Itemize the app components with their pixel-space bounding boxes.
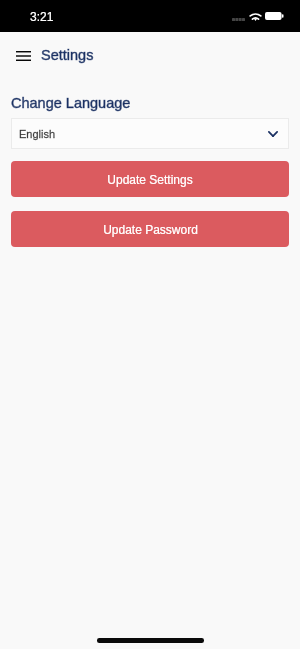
staticText: Settings — [41, 47, 94, 63]
button[interactable]: English — [11, 118, 289, 149]
staticText: 3:21 — [30, 10, 54, 23]
staticText: Update Password — [103, 223, 198, 236]
staticText: Change Language — [11, 95, 131, 111]
button[interactable]: Update Settings — [11, 161, 289, 197]
button[interactable]: Open navigation menu — [9, 41, 37, 69]
staticText: English — [19, 128, 56, 140]
staticText: English — [19, 128, 56, 140]
button[interactable]: Update Password — [11, 211, 289, 247]
staticText: Update Settings — [107, 173, 193, 186]
staticText: Settings — [41, 47, 94, 63]
staticText: Change Language — [11, 95, 131, 111]
